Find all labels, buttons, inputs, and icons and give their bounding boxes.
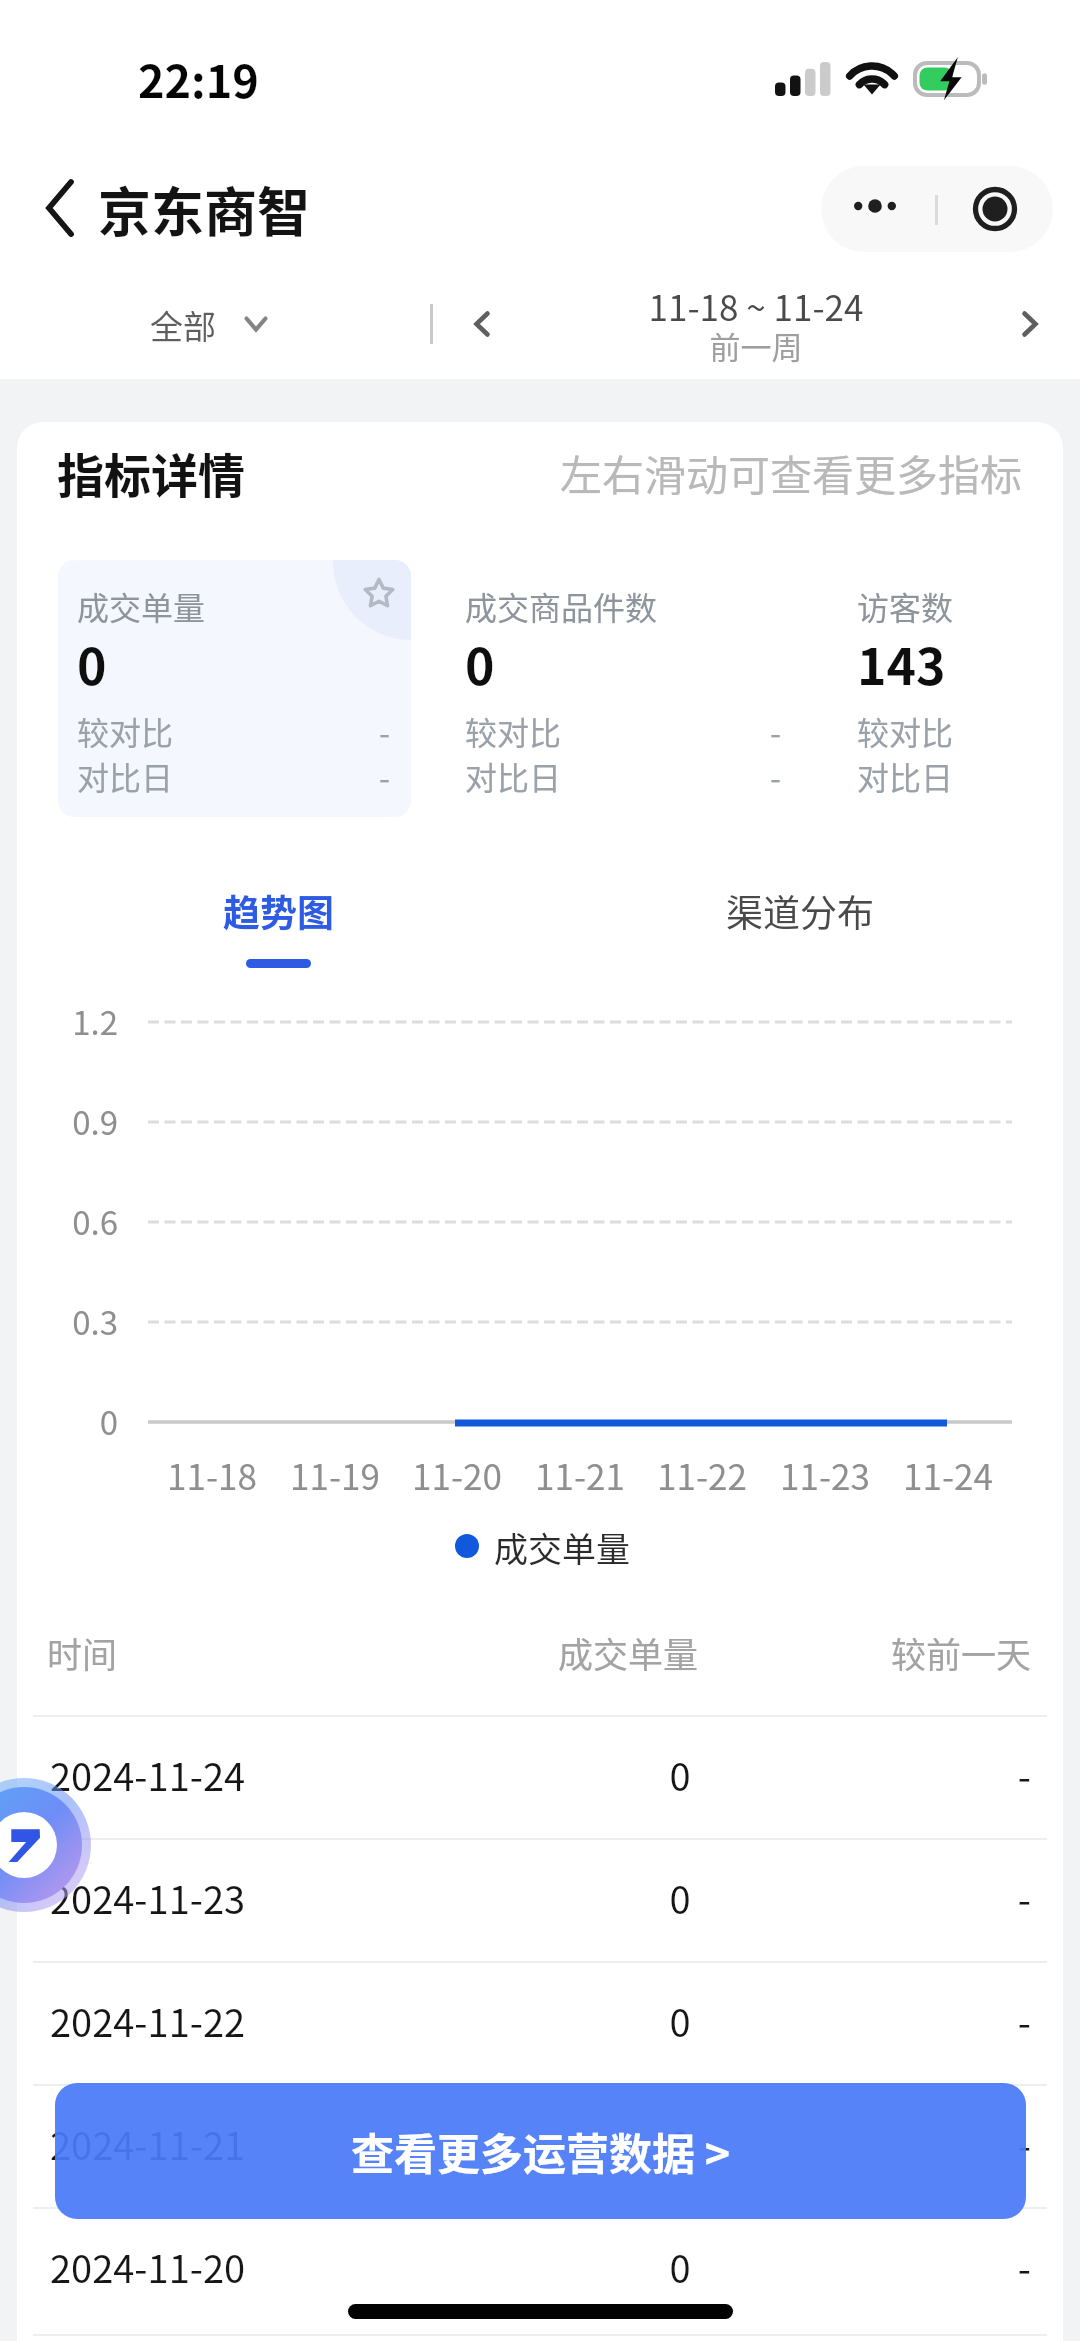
staticText: 11-20 [387,1449,527,1500]
staticText: 京东商智 [98,171,310,248]
staticText: 对比日 [465,753,562,799]
button[interactable]: 趋势图 [210,880,346,980]
staticText: 时间 [47,1627,118,1678]
staticText: 成交单量 [428,1627,828,1678]
staticText: 143 [857,627,946,699]
staticText: 11-21 [510,1449,650,1500]
staticText: - [77,753,390,799]
button[interactable]: Previous period [446,288,518,360]
staticText: 左右滑动可查看更多指标 [560,442,1022,503]
staticText: 0 [480,1747,880,1802]
staticText: 0.3 [17,1297,118,1345]
staticText: 22:19 [138,46,259,111]
staticText: 较对比 [77,708,174,754]
staticText: - [760,1870,1031,1925]
button[interactable] [58,560,411,817]
staticText: 成交商品件数 [465,583,658,629]
staticText: 0 [480,1993,880,2048]
button[interactable]: 2024-11-24 [17,1717,1063,1838]
staticText: - [760,2239,1031,2294]
staticText: 0.6 [17,1197,118,1245]
staticText: - [760,1747,1031,1802]
staticText: 成交单量 [77,583,206,629]
staticText: - [465,708,781,754]
button[interactable]: Next period [994,288,1066,360]
staticText: 1.2 [17,997,118,1045]
staticText: 0 [77,627,107,699]
staticText: 全部 [150,301,216,349]
staticText: - [760,2116,1031,2171]
button[interactable]: Menu and close mini program [821,166,1053,252]
staticText: - [465,753,781,799]
staticText: 较对比 [857,708,954,754]
button[interactable]: 全部 [138,296,280,354]
staticText: - [857,753,1063,799]
staticText: 较对比 [465,708,562,754]
staticText: 对比日 [77,753,174,799]
staticText: 指标详情 [57,438,245,506]
staticText: 前一周 [609,323,903,368]
staticText: 成交单量 [494,1523,630,1572]
button[interactable]: 2024-11-20 [17,2209,1063,2330]
button[interactable]: 2024-11-21 [17,2086,1063,2207]
staticText: 趋势图 [223,884,334,938]
staticText: 2024-11-23 [50,1870,246,1925]
staticText: 2024-11-21 [50,2116,246,2171]
staticText: 11-24 [878,1449,1018,1500]
staticText: 2024-11-22 [50,1993,246,2048]
staticText: 较前一天 [760,1627,1031,1678]
staticText: - [857,708,1063,754]
staticText: 11-22 [632,1449,772,1500]
staticText: 查看更多运营数据 > [351,2120,731,2182]
button[interactable]: 渠道分布 [724,880,880,950]
button[interactable]: Back [20,168,100,248]
staticText: 2024-11-24 [50,1747,246,1802]
button[interactable]: 2024-11-23 [17,1840,1063,1961]
staticText: 对比日 [857,753,954,799]
staticText: 11-18 ~ 11-24 [609,280,903,331]
staticText: 11-19 [265,1449,405,1500]
staticText: 0 [480,1870,880,1925]
staticText: - [760,1993,1031,2048]
staticText: 2024-11-20 [50,2239,246,2294]
button[interactable]: AI assistant [0,1778,91,1912]
staticText: 访客数 [857,583,954,629]
staticText: 渠道分布 [726,884,874,938]
staticText: 0 [465,627,495,699]
staticText: 11-18 [142,1449,282,1500]
staticText: 11-23 [755,1449,895,1500]
staticText: 0 [17,1397,118,1445]
button[interactable]: 2024-11-22 [17,1963,1063,2084]
staticText: - [77,708,390,754]
staticText: 0 [480,2239,880,2294]
staticText: 0 [480,2116,880,2171]
staticText: 0.9 [17,1097,118,1145]
button[interactable]: 查看更多运营数据 > [55,2083,1026,2219]
